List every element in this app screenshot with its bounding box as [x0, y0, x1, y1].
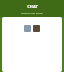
- button[interactable]: [33, 25, 40, 32]
- button[interactable]: [24, 25, 31, 32]
- staticText: CHAT: [27, 4, 38, 9]
- staticText: Friends and family: [21, 11, 43, 14]
